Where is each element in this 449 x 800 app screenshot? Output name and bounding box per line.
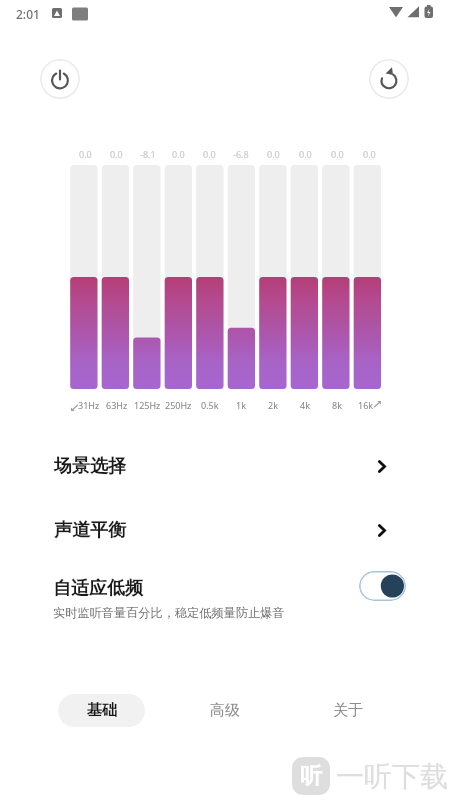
button[interactable]: 声道平衡 — [0, 502, 449, 558]
staticText: 1k — [236, 399, 246, 411]
staticText: 自适应低频 — [53, 577, 143, 600]
staticText: 125Hz — [134, 399, 161, 411]
staticText: 250Hz — [165, 399, 192, 411]
button[interactable]: 场景选择 — [0, 438, 449, 494]
staticText: 高级 — [210, 701, 240, 720]
staticText: 一听下载 — [336, 759, 448, 794]
staticText: 基础 — [87, 701, 117, 720]
button[interactable]: Reset — [369, 59, 409, 99]
staticText: 实时监听音量百分比，稳定低频量防止爆音 — [53, 605, 285, 620]
staticText: 听 — [300, 762, 322, 790]
staticText: 场景选择 — [54, 455, 126, 478]
staticText: 声道平衡 — [54, 519, 126, 542]
staticText: 0.0 — [331, 148, 344, 160]
staticText: 0.0 — [172, 148, 185, 160]
staticText: 关于 — [333, 701, 363, 720]
staticText: 0.0 — [363, 148, 376, 160]
button[interactable]: 基础 — [58, 694, 145, 727]
button[interactable]: 自适应低频 — [0, 567, 449, 629]
staticText: 16k — [358, 399, 374, 411]
staticText: -8.1 — [140, 148, 156, 160]
button[interactable]: 自适应低频开关 — [359, 571, 406, 601]
staticText: 0.5k — [201, 399, 219, 411]
button[interactable]: 关于 — [304, 694, 391, 727]
staticText: 0.0 — [79, 148, 92, 160]
staticText: 2:01 — [16, 6, 40, 22]
staticText: 0.0 — [203, 148, 216, 160]
staticText: 0.0 — [110, 148, 123, 160]
staticText: 4k — [300, 399, 310, 411]
staticText: 31Hz — [78, 399, 100, 411]
staticText: 63Hz — [106, 399, 128, 411]
staticText: 0.0 — [299, 148, 312, 160]
button[interactable]: 高级 — [181, 694, 268, 727]
staticText: 0.0 — [267, 148, 280, 160]
staticText: 2k — [268, 399, 278, 411]
staticText: -6.8 — [233, 148, 249, 160]
button[interactable]: Power — [40, 59, 80, 99]
staticText: 8k — [332, 399, 342, 411]
